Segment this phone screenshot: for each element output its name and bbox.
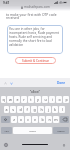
- staticText: r: [23, 97, 25, 102]
- staticText: m: [54, 117, 58, 122]
- staticText: 123: [4, 129, 9, 132]
- staticText: b: [41, 117, 44, 122]
- button[interactable]: x: [18, 116, 24, 123]
- staticText: a: [5, 107, 8, 112]
- button[interactable]: o: [56, 96, 62, 103]
- button[interactable]: l: [59, 106, 65, 113]
- staticText: f: [26, 107, 28, 112]
- button[interactable]: g: [31, 106, 37, 113]
- staticText: p: [65, 97, 68, 102]
- button[interactable]: space: [13, 127, 52, 134]
- staticText: w: [9, 97, 12, 102]
- button[interactable]: y: [35, 96, 41, 103]
- staticText: return: [57, 129, 65, 132]
- button[interactable]: c: [25, 116, 31, 123]
- staticText: h: [40, 107, 43, 112]
- staticText: x: [20, 117, 22, 122]
- button[interactable]: return: [53, 127, 69, 134]
- staticText: “allow”: [30, 90, 40, 94]
- button[interactable]: w: [7, 96, 13, 103]
- staticText: s: [12, 107, 14, 112]
- button[interactable]: u: [42, 96, 48, 103]
- button[interactable]: Previous field: [2, 80, 8, 86]
- button[interactable]: a: [4, 106, 9, 113]
- button[interactable]: f: [24, 106, 30, 113]
- button[interactable]: s: [10, 106, 16, 113]
- button[interactable]: m: [53, 116, 59, 123]
- button[interactable]: Done: [55, 80, 68, 86]
- staticText: g: [33, 107, 36, 112]
- staticText: e: [16, 97, 19, 102]
- staticText: k: [54, 107, 56, 112]
- button[interactable]: Switch keyboard: [3, 142, 9, 148]
- button[interactable]: Dictation: [61, 142, 67, 148]
- staticText: y: [37, 97, 39, 102]
- button[interactable]: Backspace: [60, 116, 69, 123]
- button[interactable]: j: [45, 106, 51, 113]
- staticText: You are in other jobs, for incompetent h…: [9, 27, 61, 47]
- button[interactable]: n: [46, 116, 52, 123]
- staticText: c: [27, 117, 29, 122]
- staticText: q: [2, 97, 5, 102]
- button[interactable]: You are in other jobs, for incompetent h…: [7, 25, 63, 54]
- button[interactable]: t: [28, 96, 34, 103]
- staticText: to make your first with OTP code receive…: [6, 12, 64, 20]
- button[interactable]: b: [39, 116, 45, 123]
- staticText: z: [13, 117, 15, 122]
- staticText: l: [62, 107, 63, 112]
- button[interactable]: v: [32, 116, 38, 123]
- staticText: 9:41: [3, 1, 10, 5]
- button[interactable]: 123: [1, 127, 12, 134]
- button[interactable]: k: [52, 106, 58, 113]
- button[interactable]: r: [21, 96, 27, 103]
- button[interactable]: h: [38, 106, 44, 113]
- button[interactable]: p: [63, 96, 69, 103]
- staticText: space: [29, 129, 36, 132]
- button[interactable]: e: [14, 96, 20, 103]
- staticText: j: [48, 107, 49, 112]
- staticText: i: [52, 97, 53, 102]
- staticText: mailsafepass.com: [24, 5, 50, 9]
- staticText: Done: [57, 81, 66, 85]
- button[interactable]: Submit & Continue: [15, 57, 56, 64]
- button[interactable]: q: [1, 96, 6, 103]
- staticText: Submit & Continue: [22, 59, 50, 63]
- button[interactable]: d: [17, 106, 23, 113]
- staticText: v: [34, 117, 36, 122]
- staticText: t: [30, 97, 32, 102]
- button[interactable]: i: [49, 96, 55, 103]
- staticText: n: [48, 117, 51, 122]
- button[interactable]: Shift: [1, 116, 10, 123]
- button[interactable]: z: [11, 116, 17, 123]
- button[interactable]: Next field: [8, 80, 14, 86]
- staticText: o: [58, 97, 61, 102]
- staticText: d: [19, 107, 22, 112]
- staticText: u: [44, 97, 47, 102]
